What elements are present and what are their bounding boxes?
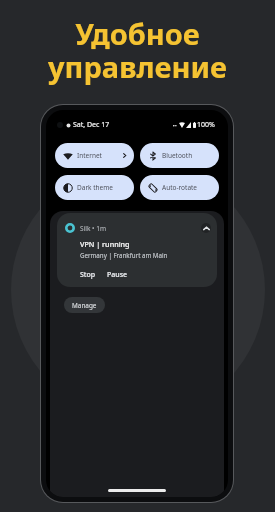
staticText: Удобное управление (0, 14, 275, 86)
staticText: Germany | Frankfurt am Main (80, 251, 168, 259)
button[interactable]: Silk • 1m (57, 213, 217, 287)
button[interactable]: Auto-rotate (140, 175, 219, 200)
staticText: Manage (72, 301, 97, 310)
button[interactable]: Stop (80, 270, 96, 280)
staticText: Dark theme (77, 183, 114, 192)
staticText: 100% (197, 120, 215, 130)
button[interactable]: Collapse (201, 223, 211, 233)
button[interactable]: Bluetooth (140, 143, 219, 168)
button[interactable]: Pause (107, 270, 128, 280)
button[interactable]: Manage (64, 297, 105, 313)
staticText: Auto-rotate (162, 183, 198, 192)
staticText: Sat, Dec 17 (73, 120, 110, 130)
button[interactable]: Internet (55, 143, 134, 168)
staticText: Silk • 1m (80, 224, 107, 233)
button[interactable]: Dark theme (55, 175, 134, 200)
staticText: Bluetooth (162, 151, 193, 160)
staticText: Internet (77, 151, 102, 160)
staticText: VPN | running (80, 239, 130, 249)
